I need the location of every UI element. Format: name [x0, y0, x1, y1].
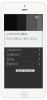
staticText: Connect Device: [6, 32, 27, 36]
staticText: Channels: [6, 53, 19, 56]
staticText: Items: [6, 58, 13, 61]
staticText: Categories: [6, 48, 21, 51]
button[interactable]: Timeline: [4, 62, 43, 67]
staticText: Information and setup: [6, 37, 37, 40]
button[interactable]: Channels: [4, 52, 43, 57]
button[interactable]: Items: [4, 57, 43, 62]
button[interactable]: Categories: [4, 47, 43, 52]
button[interactable]: Add Source: [16, 69, 35, 72]
staticText: Add Source: [17, 69, 33, 72]
staticText: Timeline: [6, 62, 18, 66]
